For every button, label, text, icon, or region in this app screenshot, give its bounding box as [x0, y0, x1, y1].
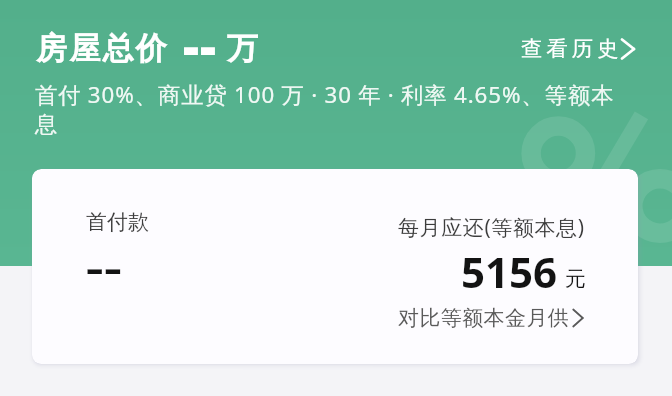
- staticText: --: [85, 224, 122, 306]
- button[interactable]: 对比等额本金月供: [394, 302, 590, 334]
- staticText: 5156: [461, 243, 558, 300]
- staticText: 首付 30%、商业贷 100 万 · 30 年 · 利率 4.65%、等额本 息: [35, 79, 615, 139]
- button[interactable]: 查看历史: [516, 32, 646, 65]
- staticText: --: [183, 12, 217, 80]
- staticText: 对比等额本金月供: [398, 305, 570, 331]
- staticText: 万: [227, 29, 261, 68]
- staticText: 房屋总价: [36, 29, 169, 68]
- staticText: 首付款: [86, 209, 149, 235]
- staticText: 查看历史: [521, 35, 623, 62]
- staticText: 每月应还(等额本息): [398, 213, 585, 242]
- staticText: 元: [565, 266, 586, 292]
